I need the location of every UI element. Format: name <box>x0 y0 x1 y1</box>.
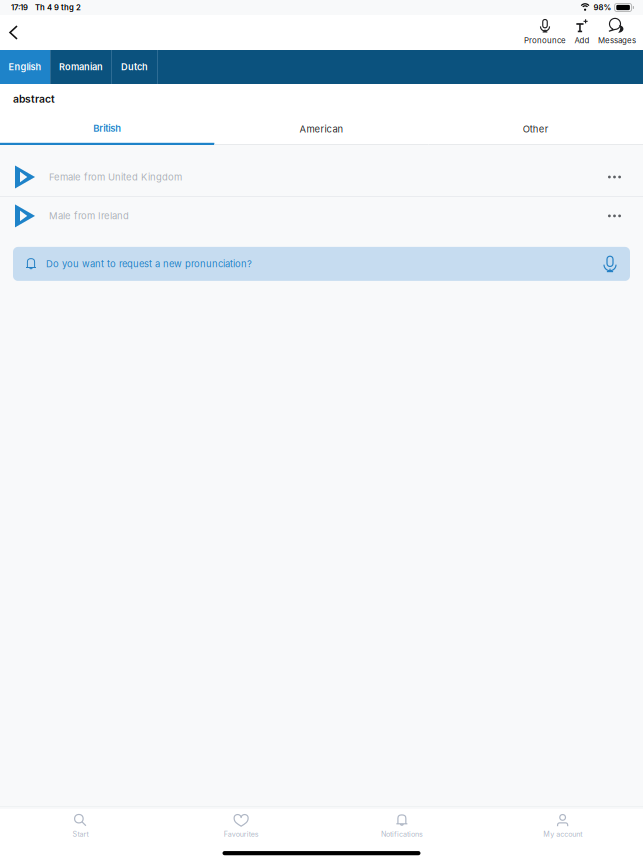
button[interactable]: Male from Ireland <box>0 197 643 235</box>
staticText: Messages <box>598 36 636 45</box>
staticText: Dutch <box>121 61 148 72</box>
staticText: Male from Ireland <box>49 210 129 222</box>
staticText: My account <box>543 830 582 838</box>
staticText: English <box>8 61 41 72</box>
button[interactable]: Notifications <box>321 805 482 845</box>
button[interactable]: Add <box>570 15 594 50</box>
button[interactable]: British <box>0 114 214 145</box>
staticText: Notifications <box>381 830 423 838</box>
staticText: 17:19 <box>11 3 28 12</box>
button[interactable]: Other <box>429 114 643 145</box>
button[interactable]: Do you want to request a new pronunciati… <box>13 247 630 281</box>
button[interactable]: English <box>0 50 50 84</box>
staticText: 98% <box>594 3 612 12</box>
button[interactable]: Pronounce <box>521 15 569 50</box>
button[interactable]: Messages <box>595 15 639 50</box>
button[interactable]: Female from United Kingdom <box>0 158 643 196</box>
staticText: Other <box>523 123 549 135</box>
staticText: Do you want to request a new pronunciati… <box>46 258 252 270</box>
button[interactable]: Start <box>0 805 161 845</box>
staticText: Female from United Kingdom <box>49 171 182 183</box>
staticText: Pronounce <box>524 36 566 45</box>
button[interactable]: Back <box>0 15 31 50</box>
staticText: Romanian <box>59 61 103 72</box>
staticText: Start <box>72 830 88 838</box>
button[interactable]: My account <box>482 805 643 845</box>
staticText: British <box>93 123 121 134</box>
button[interactable]: Romanian <box>51 50 111 84</box>
staticText: American <box>299 123 343 135</box>
staticText: abstract <box>13 93 55 105</box>
staticText: Add <box>574 36 589 45</box>
button[interactable]: American <box>214 114 429 145</box>
staticText: Favourites <box>224 830 259 838</box>
staticText: Th 4 9 thg 2 <box>35 3 81 12</box>
button[interactable]: Dutch <box>112 50 157 84</box>
button[interactable]: Favourites <box>161 805 322 845</box>
